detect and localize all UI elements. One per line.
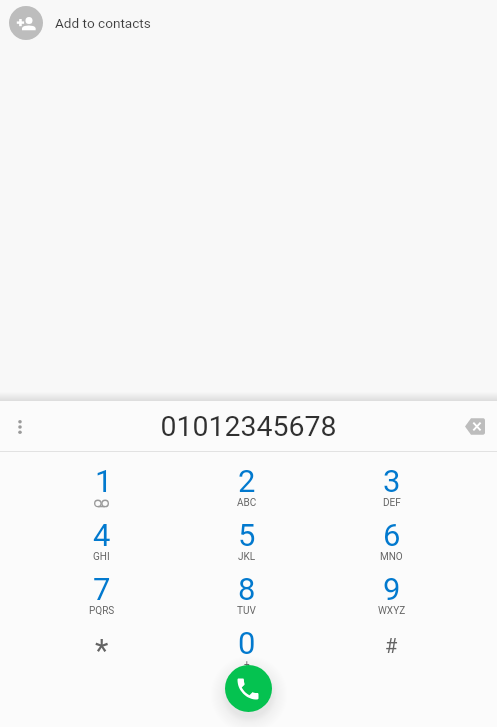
staticText: DEF: [383, 497, 401, 509]
staticText: 7: [93, 571, 111, 607]
button[interactable]: 6: [319, 515, 464, 569]
button[interactable]: 5: [174, 515, 319, 569]
staticText: #: [385, 634, 398, 657]
staticText: *: [95, 632, 109, 668]
staticText: +: [244, 659, 250, 671]
button[interactable]: 0: [174, 623, 319, 677]
button[interactable]: 2: [174, 461, 319, 515]
staticText: 5: [238, 517, 256, 553]
button[interactable]: Call: [225, 665, 272, 712]
staticText: 01012345678: [160, 410, 337, 443]
staticText: 9: [383, 571, 401, 607]
button[interactable]: 7: [29, 569, 174, 623]
staticText: TUV: [237, 605, 256, 617]
staticText: 4: [93, 517, 111, 553]
staticText: GHI: [93, 551, 110, 563]
button[interactable]: 3: [319, 461, 464, 515]
staticText: Add to contacts: [55, 15, 151, 31]
staticText: ABC: [237, 497, 257, 509]
button[interactable]: *: [29, 623, 174, 677]
staticText: 2: [238, 463, 256, 499]
staticText: 0: [238, 625, 256, 661]
staticText: 8: [238, 571, 256, 607]
staticText: PQRS: [89, 605, 115, 617]
button[interactable]: 9: [319, 569, 464, 623]
button[interactable]: 8: [174, 569, 319, 623]
button[interactable]: Add to contacts: [0, 0, 497, 46]
staticText: 3: [383, 463, 401, 499]
button[interactable]: Backspace: [457, 408, 493, 444]
staticText: 6: [383, 517, 401, 553]
button[interactable]: More options: [3, 410, 36, 443]
staticText: WXYZ: [378, 605, 406, 617]
button[interactable]: 1: [29, 461, 174, 515]
staticText: JKL: [238, 551, 256, 563]
staticText: MNO: [380, 551, 403, 563]
button[interactable]: #: [319, 623, 464, 677]
button[interactable]: 4: [29, 515, 174, 569]
staticText: 1: [95, 463, 113, 499]
